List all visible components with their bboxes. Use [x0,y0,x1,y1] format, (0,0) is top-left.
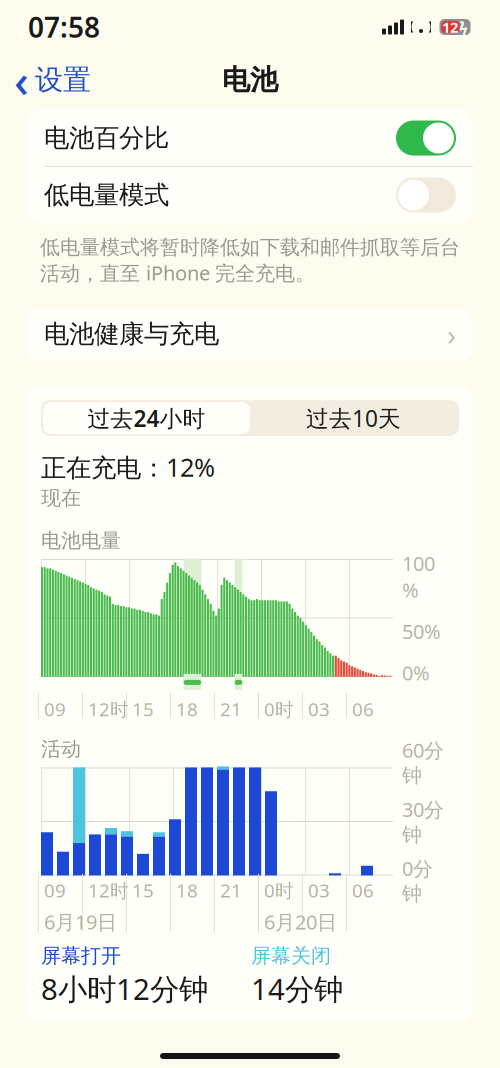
staticText: 09 [44,878,66,903]
button[interactable]: 电池健康与充电 [27,308,473,360]
staticText: 21 [220,878,242,903]
staticText: 12时 [88,696,129,721]
staticText: 100% [402,550,435,603]
staticText: 15 [132,878,154,903]
staticText: 0% [402,659,430,686]
staticText: 过去24小时 [87,403,205,433]
staticText: 50% [402,618,441,644]
staticText: 现在 [41,486,81,510]
staticText: ‹ [14,50,29,110]
staticText: 设置 [35,63,91,97]
staticText: 正在充电：12% [41,450,215,484]
staticText: ϟ [459,16,468,38]
staticText: 活动 [41,737,81,761]
button[interactable]: 过去24小时 [43,402,250,434]
staticText: 03 [308,878,330,903]
button[interactable]: 低电量模式 [27,167,473,223]
staticText: 电池电量 [41,528,121,553]
staticText: 低电量模式 [44,179,169,210]
staticText: 电池百分比 [44,122,169,153]
staticText: 12 [442,17,458,37]
button[interactable]: 过去10天 [250,402,457,434]
staticText: 18 [176,878,198,903]
staticText: 09 [44,696,66,721]
staticText: 电池健康与充电 [44,319,219,350]
staticText: 0分钟 [402,855,433,906]
staticText: 6月20日 [264,909,337,935]
staticText: 03 [308,696,330,721]
staticText: 06 [352,878,374,903]
staticText: 15 [132,696,154,721]
staticText: 0时 [264,878,294,903]
staticText: 0时 [264,696,294,721]
staticText: 低电量模式将暂时降低如下载和邮件抓取等后台活动，直至 iPhone 完全充电。 [40,235,460,286]
staticText: 21 [220,696,242,721]
staticText: 电池 [222,63,278,97]
staticText: 屏幕打开 [41,943,121,968]
staticText: 过去10天 [306,403,401,433]
staticText: 屏幕关闭 [251,943,331,968]
staticText: 60分钟 [402,737,444,788]
staticText: › [447,315,456,354]
button[interactable]: 电池百分比 [27,110,473,166]
button[interactable]: ‹ [0,44,105,116]
staticText: 12时 [88,878,129,903]
staticText: 06 [352,696,374,721]
staticText: 07:58 [28,8,100,46]
staticText: 30分钟 [402,796,444,847]
staticText: 8小时12分钟 [41,969,208,1008]
staticText: 14分钟 [251,969,343,1008]
staticText: 6月19日 [44,909,117,935]
staticText: 18 [176,696,198,721]
